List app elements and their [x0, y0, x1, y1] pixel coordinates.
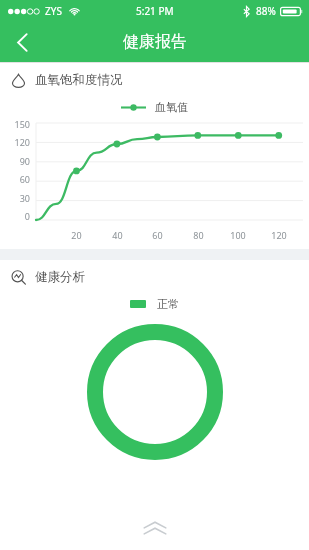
staticText: 100 — [230, 229, 246, 241]
staticText: 5:21 PM — [136, 4, 174, 18]
staticText: 120 — [14, 136, 30, 148]
staticText: 60 — [152, 229, 163, 241]
staticText: 80 — [193, 229, 204, 241]
button[interactable]: 血氧饱和度情况 — [0, 63, 309, 97]
staticText: 90 — [19, 155, 30, 167]
staticText: 正常 — [157, 297, 179, 311]
staticText: 60 — [19, 173, 30, 185]
button[interactable]: Collapse — [0, 506, 309, 550]
staticText: 30 — [19, 192, 30, 204]
staticText: 150 — [14, 118, 30, 130]
button[interactable]: 健康分析 — [0, 260, 309, 294]
staticText: 120 — [271, 229, 287, 241]
staticText: 20 — [71, 229, 82, 241]
staticText: 40 — [112, 229, 123, 241]
staticText: 血氧值 — [155, 100, 188, 114]
staticText: 健康分析 — [35, 269, 85, 285]
staticText: 0 — [24, 210, 30, 222]
staticText: 血氧饱和度情况 — [35, 72, 123, 88]
staticText: 健康报告 — [123, 32, 187, 52]
button[interactable]: Back — [0, 22, 44, 62]
staticText: ZYS — [45, 4, 62, 18]
staticText: 88% — [256, 4, 276, 18]
